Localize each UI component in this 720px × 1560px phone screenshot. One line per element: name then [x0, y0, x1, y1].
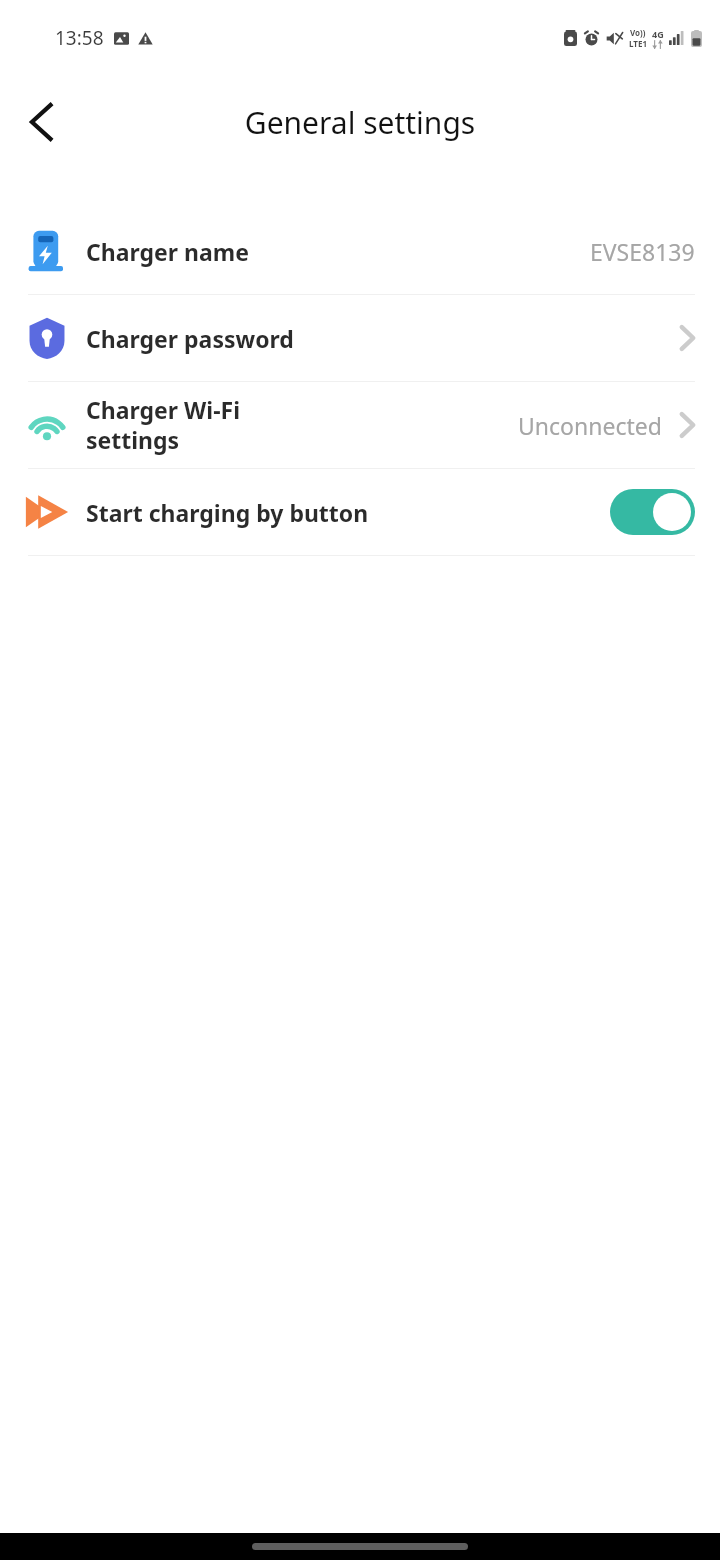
button[interactable]: Start charging by button toggle: [610, 489, 695, 535]
staticText: General settings: [0, 102, 720, 143]
staticText: 13:58: [55, 25, 104, 51]
staticText: Vo)): [630, 27, 646, 38]
staticText: 4G: [652, 28, 664, 40]
button[interactable]: Charger password: [0, 295, 720, 381]
button[interactable]: Back: [10, 90, 74, 154]
staticText: EVSE8139: [590, 236, 695, 267]
button[interactable]: Charger name: [0, 208, 720, 294]
staticText: Start charging by button: [86, 497, 369, 528]
staticText: Charger Wi-Fi settings: [86, 394, 296, 456]
staticText: Charger password: [86, 323, 294, 354]
button[interactable]: Start charging by button: [0, 469, 720, 555]
button[interactable]: Charger Wi-Fi settings: [0, 382, 720, 468]
staticText: LTE1: [629, 38, 647, 49]
staticText: Unconnected: [518, 410, 662, 441]
staticText: Charger name: [86, 236, 249, 267]
